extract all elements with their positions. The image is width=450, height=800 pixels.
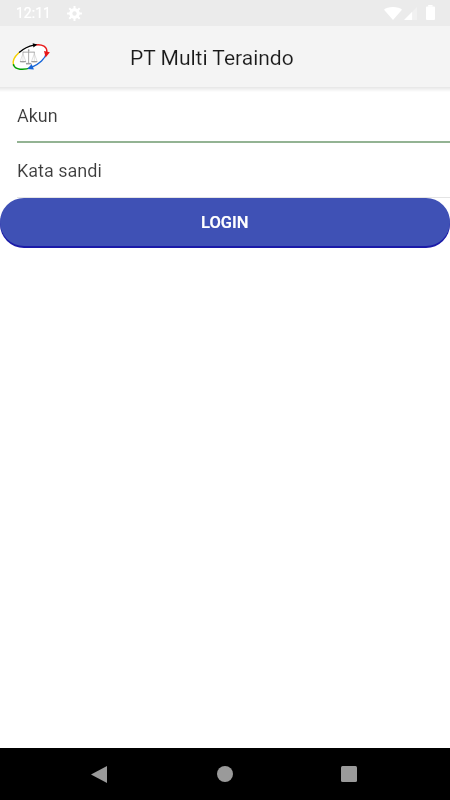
button[interactable]: Back xyxy=(75,750,123,798)
staticText: PT Multi Teraindo xyxy=(130,46,294,71)
button[interactable]: Recent apps xyxy=(325,750,373,798)
staticText: LOGIN xyxy=(201,213,249,232)
staticText: 12:11 xyxy=(16,5,51,21)
button[interactable]: Home xyxy=(201,750,249,798)
staticText: Akun xyxy=(17,105,58,126)
other: Logo xyxy=(10,42,50,72)
staticText: Kata sandi xyxy=(17,160,102,181)
button[interactable]: LOGIN xyxy=(0,198,450,246)
